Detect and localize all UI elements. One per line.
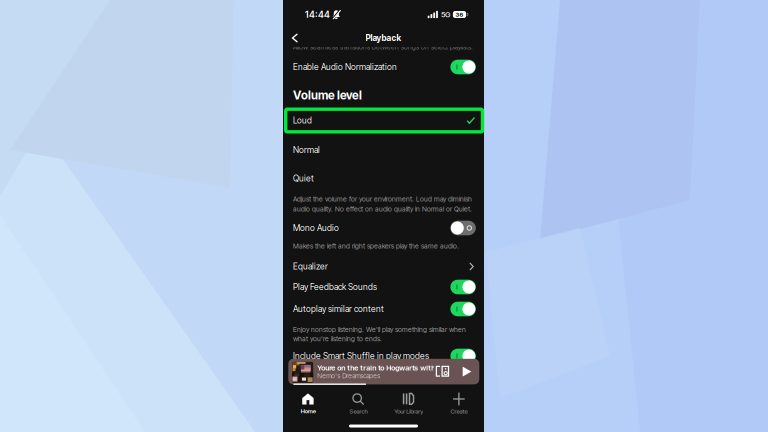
button[interactable]: Create <box>434 392 484 416</box>
button[interactable]: Search <box>333 392 383 416</box>
staticText: Makes the left and right speakers play t… <box>293 242 459 250</box>
staticText: Home <box>301 408 316 415</box>
staticText: Create <box>450 408 467 415</box>
staticText: 36 <box>455 11 463 18</box>
button[interactable]: Youre on the train to Hogwarts with Ha <box>288 359 479 385</box>
staticText: Volume level <box>293 88 362 102</box>
button[interactable]: Your Library <box>383 392 434 416</box>
button[interactable]: Loud <box>286 109 482 132</box>
staticText: 5G <box>441 10 450 19</box>
staticText: Allow seamless transitions between songs… <box>293 43 473 51</box>
staticText: Loud <box>293 115 312 126</box>
button[interactable]: Include Smart Shuffle in play modes <box>283 346 484 366</box>
button[interactable]: Play Feedback Sounds <box>283 277 484 297</box>
staticText: Adjust the volume for your environment. … <box>293 195 472 203</box>
staticText: Youre on the train to Hogwarts with Ha <box>317 363 446 372</box>
staticText: Mono Audio <box>293 223 339 233</box>
staticText: Nemo's Dreamscapes <box>317 372 380 380</box>
staticText: Autoplay similar content <box>293 304 384 314</box>
button[interactable]: Mono Audio <box>283 218 484 238</box>
staticText: Enable Audio Normalization <box>293 62 397 72</box>
staticText: Enjoy nonstop listening. We'll play some… <box>293 325 466 334</box>
staticText: audio quality. No effect on audio qualit… <box>293 205 472 213</box>
button[interactable]: Normal <box>283 141 484 159</box>
staticText: Normal <box>293 145 320 155</box>
button[interactable]: Home <box>283 392 333 416</box>
staticText: Search <box>349 408 367 415</box>
staticText: what you're listening to ends. <box>293 335 382 343</box>
staticText: Quiet <box>293 173 314 184</box>
button[interactable]: Enable Audio Normalization <box>283 57 484 77</box>
staticText: Equalizer <box>293 261 328 272</box>
button[interactable]: Equalizer <box>283 256 484 276</box>
staticText: Playback <box>365 33 401 43</box>
staticText: Include Smart Shuffle in play modes <box>293 351 429 361</box>
button[interactable]: Autoplay similar content <box>283 299 484 319</box>
staticText: Play Feedback Sounds <box>293 282 377 292</box>
button[interactable]: Back <box>286 30 304 46</box>
staticText: Your Library <box>394 408 423 415</box>
button[interactable]: Quiet <box>283 169 484 187</box>
staticText: 14:44 <box>305 9 330 20</box>
